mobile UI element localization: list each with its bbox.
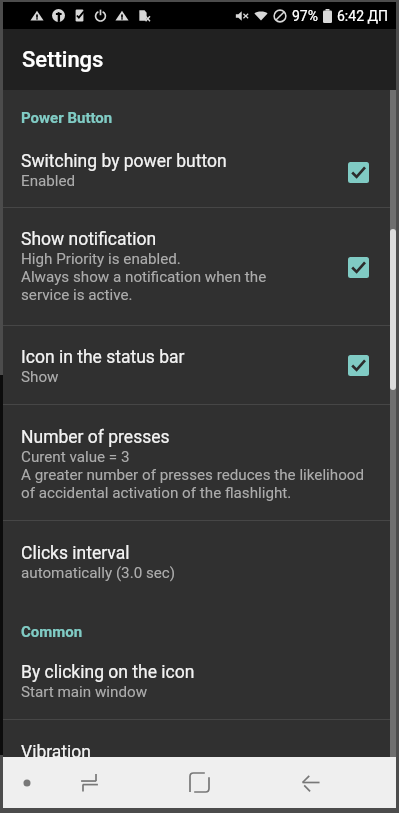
staticText: A greater number of presses reduces the … [21,466,365,484]
staticText: Show [21,368,59,386]
staticText: Vibration [21,742,91,757]
staticText: Clicks interval [21,543,130,564]
button[interactable]: Toggle Switching by power button [343,157,373,187]
button[interactable]: Clicks interval [3,521,396,610]
button[interactable]: Toggle Show notification [343,252,373,282]
button[interactable]: Recent apps [61,757,117,808]
button[interactable]: By clicking on the icon [3,648,396,719]
staticText: Show notification [21,229,157,250]
button[interactable]: Toggle Icon in the status bar [343,350,373,380]
staticText: Enabled [21,172,76,190]
staticText: of accidental activation of the flashlig… [21,484,292,502]
staticText: Always show a notification when the [21,268,267,286]
staticText: High Priority is enabled. [21,250,181,268]
staticText: By clicking on the icon [21,662,195,683]
button[interactable]: Menu [0,757,55,808]
button[interactable]: Icon in the status bar [3,326,396,404]
button[interactable]: Switching by power button [3,136,396,207]
staticText: Settings [22,47,104,73]
staticText: Curent value = 3 [21,448,130,466]
button[interactable]: Vibration [3,720,396,757]
staticText: Start main window [21,683,148,701]
button[interactable]: Home [171,757,227,808]
staticText: Number of presses [21,427,170,448]
staticText: Common [21,623,83,641]
staticText: 97% [292,8,318,24]
button[interactable]: Number of presses [3,405,396,520]
staticText: Switching by power button [21,151,227,172]
button[interactable]: Back [282,757,338,808]
staticText: service is active. [21,286,133,304]
button[interactable]: Show notification [3,208,396,325]
staticText: automatically (3.0 sec) [21,564,176,582]
staticText: 6:42 ДП [337,8,388,24]
staticText: Icon in the status bar [21,347,185,368]
staticText: Power Button [21,109,113,127]
